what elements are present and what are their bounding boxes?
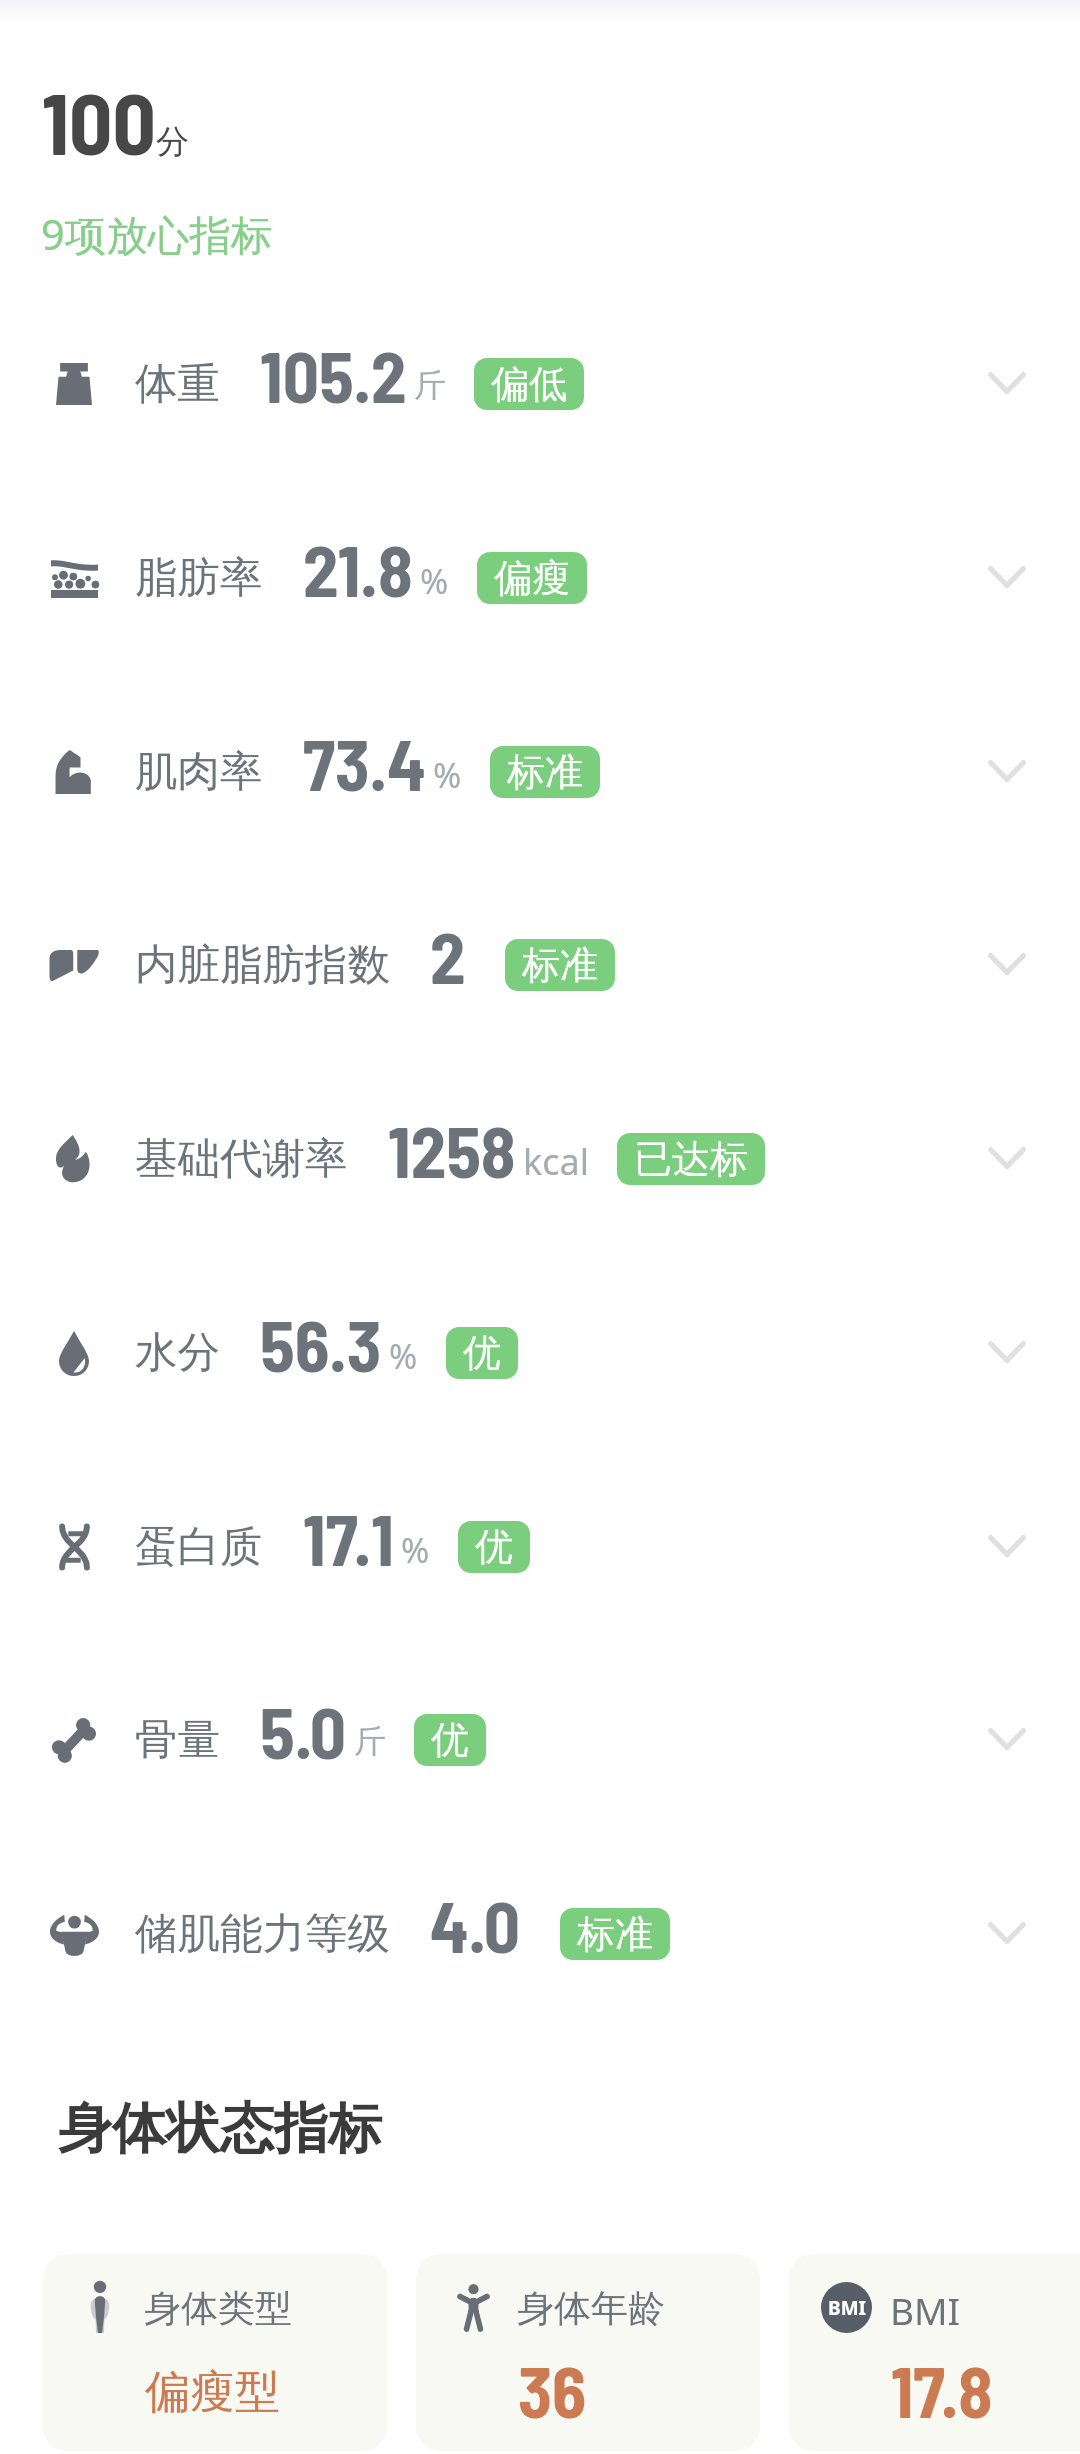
staticText: % <box>389 1333 418 1379</box>
staticText: 标准 <box>577 1910 653 1958</box>
button[interactable]: Expand 蛋白质 <box>977 1516 1037 1576</box>
staticText: 身体状态指标 <box>58 2095 382 2163</box>
staticText: 优 <box>431 1716 469 1764</box>
staticText: 偏瘦 <box>494 554 570 602</box>
staticText: 分 <box>156 121 189 163</box>
staticText: % <box>420 558 449 604</box>
button[interactable]: 骨量 <box>0 1642 1080 1836</box>
staticText: 36 <box>518 2348 587 2432</box>
button[interactable]: 肌肉率 <box>0 674 1080 868</box>
staticText: 脂肪率 <box>135 551 263 605</box>
staticText: 17.1 <box>303 1495 394 1580</box>
button[interactable]: Expand 内脏脂肪指数 <box>977 934 1037 994</box>
button[interactable]: 内脏脂肪指数 <box>0 867 1080 1061</box>
button[interactable]: 水分 <box>0 1255 1080 1449</box>
staticText: BMI <box>890 2285 961 2335</box>
staticText: 2 <box>430 913 466 998</box>
staticText: 优 <box>463 1329 501 1377</box>
staticText: 优 <box>475 1523 513 1571</box>
staticText: 标准 <box>507 748 583 796</box>
staticText: 4.0 <box>430 1882 521 1967</box>
staticText: 1258 <box>388 1107 516 1192</box>
button[interactable]: 脂肪率 <box>0 480 1080 674</box>
button[interactable]: 体重 <box>0 286 1080 480</box>
staticText: 17.8 <box>891 2348 993 2432</box>
staticText: 9项放心指标 <box>41 206 273 263</box>
button[interactable]: Expand 脂肪率 <box>977 547 1037 607</box>
button[interactable]: BMI <box>789 2254 1080 2451</box>
button[interactable]: Expand 体重 <box>977 353 1037 413</box>
staticText: 体重 <box>135 357 220 411</box>
staticText: 身体年龄 <box>517 2285 665 2332</box>
staticText: 内脏脂肪指数 <box>135 938 390 992</box>
button[interactable]: Expand 肌肉率 <box>977 741 1037 801</box>
staticText: % <box>433 752 462 798</box>
button[interactable]: 储肌能力等级 <box>0 1836 1080 2030</box>
staticText: 蛋白质 <box>135 1520 263 1574</box>
staticText: 73.4 <box>303 720 426 805</box>
staticText: 储肌能力等级 <box>135 1907 390 1961</box>
button[interactable]: 身体类型 <box>43 2254 387 2451</box>
staticText: 已达标 <box>634 1135 748 1183</box>
button[interactable]: Expand 骨量 <box>977 1709 1037 1769</box>
button[interactable]: Expand 基础代谢率 <box>977 1128 1037 1188</box>
staticText: 105.2 <box>260 332 407 417</box>
button[interactable]: 蛋白质 <box>0 1449 1080 1643</box>
staticText: BMI <box>828 2295 866 2321</box>
staticText: % <box>401 1527 430 1573</box>
staticText: 56.3 <box>260 1301 382 1386</box>
button[interactable]: Expand 水分 <box>977 1322 1037 1382</box>
staticText: 基础代谢率 <box>135 1132 348 1186</box>
staticText: 骨量 <box>135 1713 220 1767</box>
staticText: 5.0 <box>260 1688 347 1773</box>
button[interactable]: 基础代谢率 <box>0 1061 1080 1255</box>
staticText: kcal <box>523 1137 589 1186</box>
staticText: 标准 <box>522 941 598 989</box>
staticText: 肌肉率 <box>135 745 263 799</box>
staticText: 21.8 <box>303 526 413 611</box>
staticText: 100 <box>42 70 156 172</box>
staticText: 偏低 <box>491 360 567 408</box>
staticText: 斤 <box>354 1721 386 1761</box>
button[interactable]: 身体年龄 <box>416 2254 760 2451</box>
staticText: 水分 <box>135 1326 220 1380</box>
staticText: 偏瘦型 <box>145 2364 280 2421</box>
button[interactable]: Expand 储肌能力等级 <box>977 1903 1037 1963</box>
staticText: 身体类型 <box>144 2285 292 2332</box>
staticText: 斤 <box>414 365 446 405</box>
